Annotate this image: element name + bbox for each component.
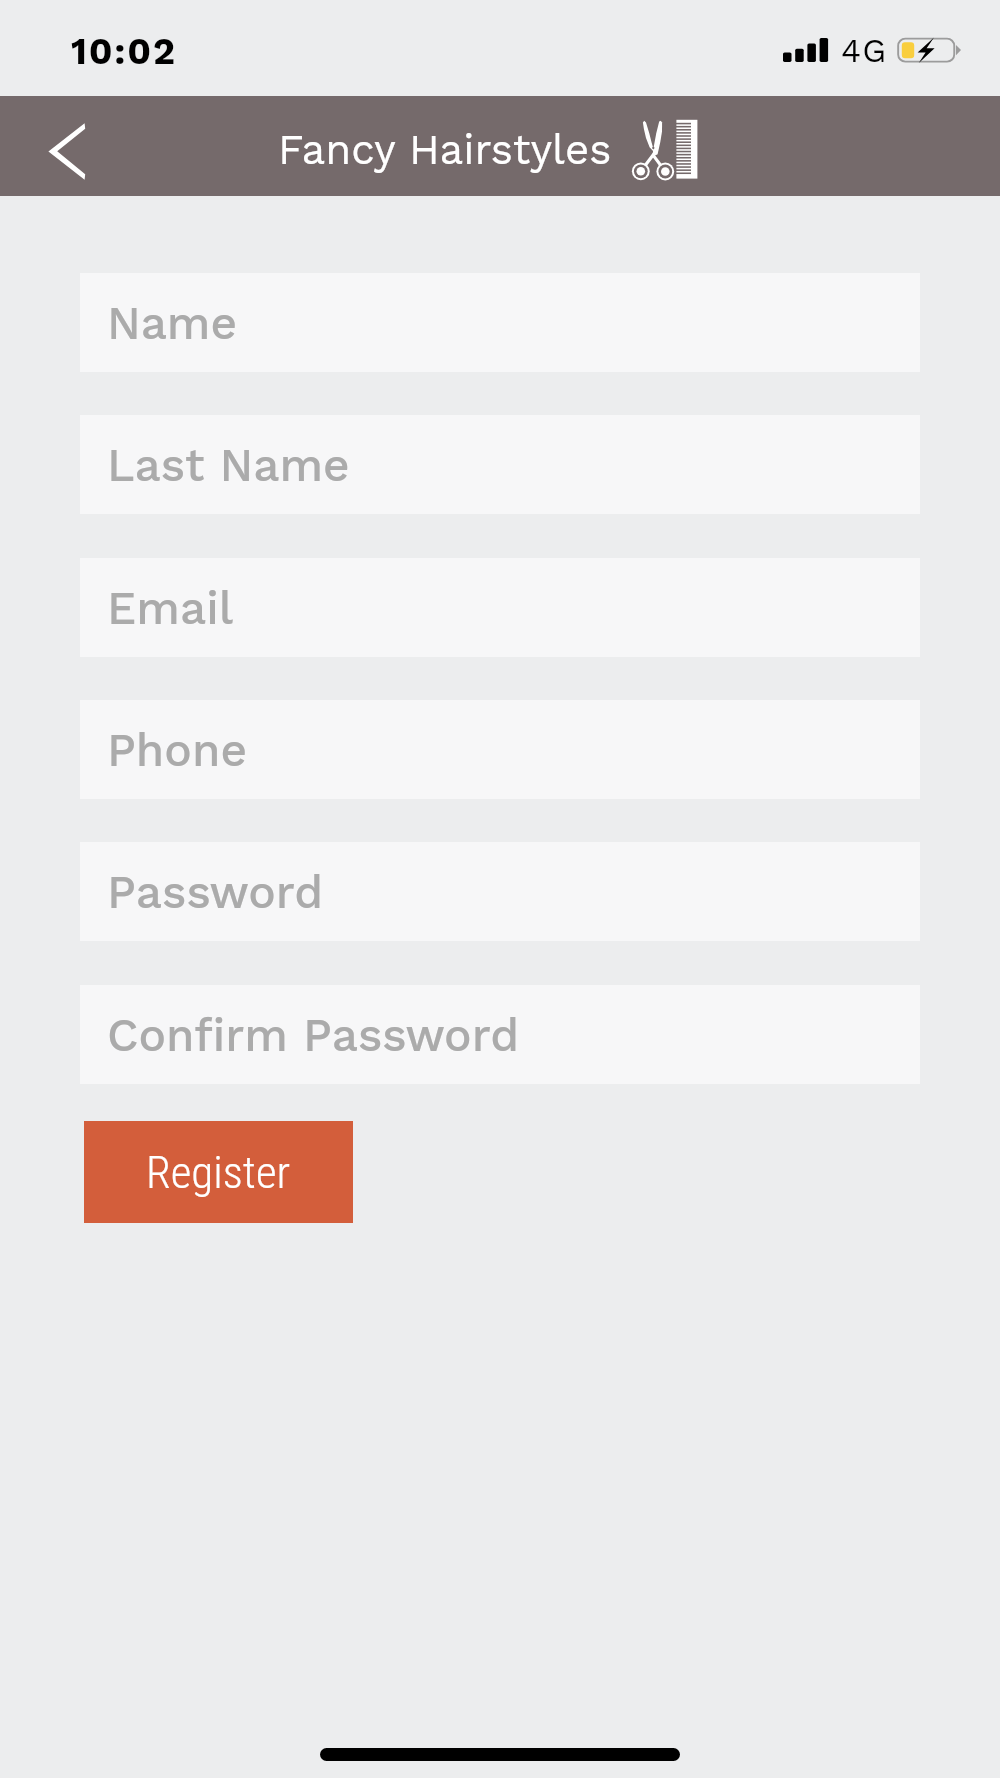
button[interactable]: Phone [80,700,920,799]
button[interactable]: Register [84,1121,353,1223]
button[interactable]: Name [80,273,920,372]
staticText: Password [107,865,324,919]
button[interactable]: Confirm Password [80,985,920,1084]
staticText: Phone [107,723,247,777]
staticText: Last Name [107,438,350,492]
staticText: 10:02 [71,30,177,73]
staticText: Email [107,581,234,635]
staticText: Fancy Hairstyles [278,125,612,174]
button[interactable]: Back [24,102,112,190]
staticText: Confirm Password [107,1008,519,1062]
staticText: 4G [841,31,888,70]
staticText: Register [146,1146,291,1199]
staticText: Name [107,296,238,350]
button[interactable]: Password [80,842,920,941]
button[interactable]: Last Name [80,415,920,514]
button[interactable]: Email [80,558,920,657]
